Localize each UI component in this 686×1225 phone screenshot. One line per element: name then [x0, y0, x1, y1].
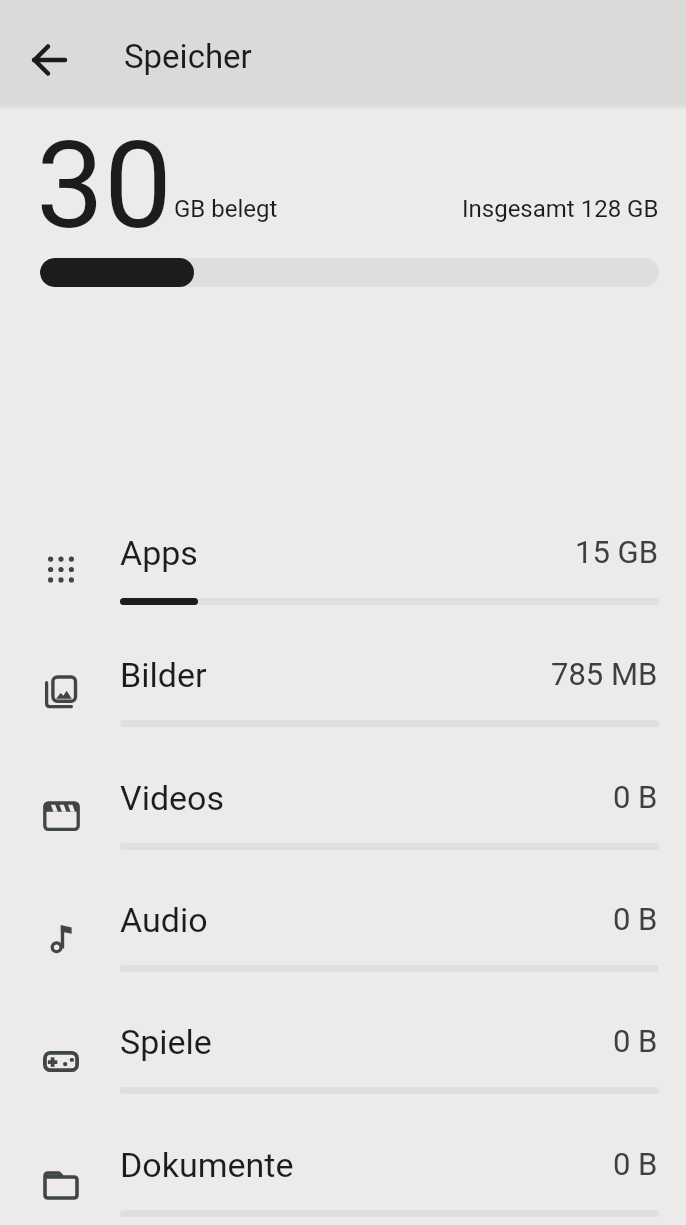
- button[interactable]: Videos: [0, 751, 686, 873]
- staticText: 0 B: [613, 1146, 658, 1182]
- button[interactable]: Dokumente: [0, 1118, 686, 1225]
- staticText: 30: [36, 115, 173, 257]
- staticText: 0 B: [613, 779, 658, 815]
- staticText: Videos: [120, 778, 225, 818]
- button[interactable]: Apps: [0, 506, 686, 628]
- staticText: 0 B: [613, 901, 658, 937]
- staticText: Speicher: [124, 37, 252, 76]
- button[interactable]: [26, 36, 74, 84]
- button[interactable]: Spiele: [0, 995, 686, 1117]
- staticText: Insgesamt 128 GB: [462, 195, 659, 223]
- button[interactable]: Audio: [0, 873, 686, 995]
- staticText: 15 GB: [575, 534, 658, 570]
- staticText: Apps: [120, 533, 198, 573]
- staticText: GB belegt: [174, 195, 278, 223]
- staticText: 785 MB: [551, 656, 658, 692]
- staticText: Bilder: [120, 655, 207, 695]
- staticText: Spiele: [120, 1022, 212, 1062]
- staticText: Audio: [120, 900, 208, 940]
- button[interactable]: Bilder: [0, 628, 686, 750]
- staticText: 0 B: [613, 1023, 658, 1059]
- staticText: Dokumente: [120, 1145, 294, 1185]
